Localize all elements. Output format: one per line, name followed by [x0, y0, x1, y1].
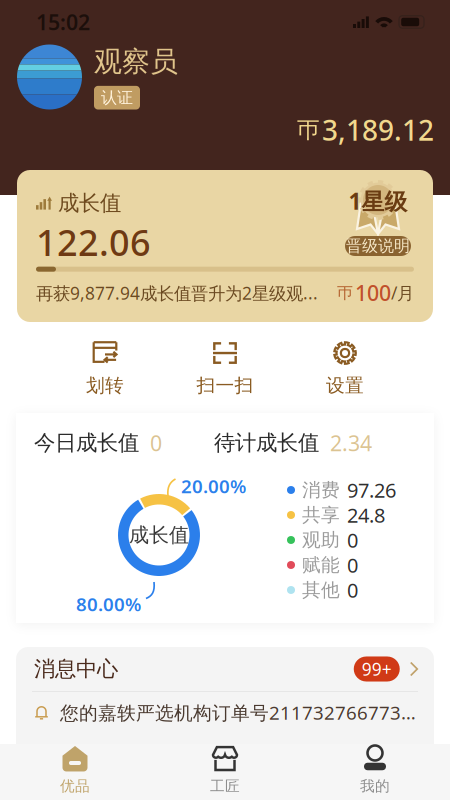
staticText: 其他 — [302, 578, 340, 601]
button[interactable]: 消息中心 — [16, 647, 434, 691]
staticText: 认证 — [101, 88, 133, 108]
button[interactable]: 晋级说明 — [345, 236, 411, 256]
staticText: 您的嘉轶严选机构订单号211732766773617874 … — [60, 741, 420, 766]
button[interactable]: 您的嘉轶严选机构订单号211732766773617874 … — [16, 692, 434, 733]
staticText: 晋级说明 — [346, 236, 410, 256]
staticText: 0 — [347, 527, 358, 553]
staticText: 3,189.12 — [322, 111, 434, 149]
staticText: /月 — [391, 281, 414, 304]
staticText: 1星级 — [348, 186, 407, 216]
staticText: 20.00% — [181, 474, 246, 498]
staticText: 设置 — [326, 374, 364, 397]
button[interactable]: 优品 — [0, 740, 150, 800]
button[interactable]: 扫一扫 — [165, 335, 285, 403]
staticText: 122.06 — [36, 218, 151, 266]
button[interactable]: 我的 — [300, 740, 450, 800]
staticText: 0 — [150, 429, 162, 457]
staticText: 15:02 — [36, 8, 90, 36]
button[interactable]: 划转 — [45, 335, 165, 403]
staticText: 24.8 — [347, 502, 385, 528]
staticText: 您的嘉轶严选机构订单号211732766773617874 … — [60, 700, 420, 725]
staticText: 再获9,877.94成长值晋升为2星级观察员立享 — [36, 281, 332, 304]
staticText: 0 — [347, 577, 358, 603]
staticText: 待计成长值 — [214, 430, 319, 456]
staticText: 工匠 — [210, 777, 240, 795]
staticText: 2.34 — [330, 429, 372, 457]
staticText: 赋能 — [302, 553, 340, 576]
staticText: 97.26 — [347, 477, 396, 503]
staticText: 观察员 — [94, 44, 178, 79]
staticText: 80.00% — [76, 592, 141, 616]
staticText: 消息中心 — [34, 656, 118, 682]
button[interactable]: 工匠 — [150, 740, 300, 800]
staticText: 消费 — [302, 478, 340, 501]
staticText: 成长值 — [129, 523, 189, 547]
staticText: 帀 — [337, 283, 353, 303]
staticText: 扫一扫 — [196, 374, 253, 397]
staticText: 划转 — [86, 374, 124, 397]
staticText: 99+ — [362, 657, 392, 680]
staticText: 100 — [355, 279, 391, 307]
staticText: 0 — [347, 552, 358, 578]
button[interactable]: 您的嘉轶严选机构订单号211732766773617874 … — [16, 733, 434, 774]
staticText: 今日成长值 — [34, 430, 139, 456]
staticText: 我的 — [360, 777, 390, 795]
staticText: 成长值 — [58, 190, 121, 216]
staticText: 优品 — [60, 777, 90, 795]
button[interactable]: 设置 — [285, 335, 405, 403]
staticText: 帀 — [297, 116, 320, 144]
staticText: 观助 — [302, 528, 340, 551]
staticText: 共享 — [302, 503, 340, 526]
